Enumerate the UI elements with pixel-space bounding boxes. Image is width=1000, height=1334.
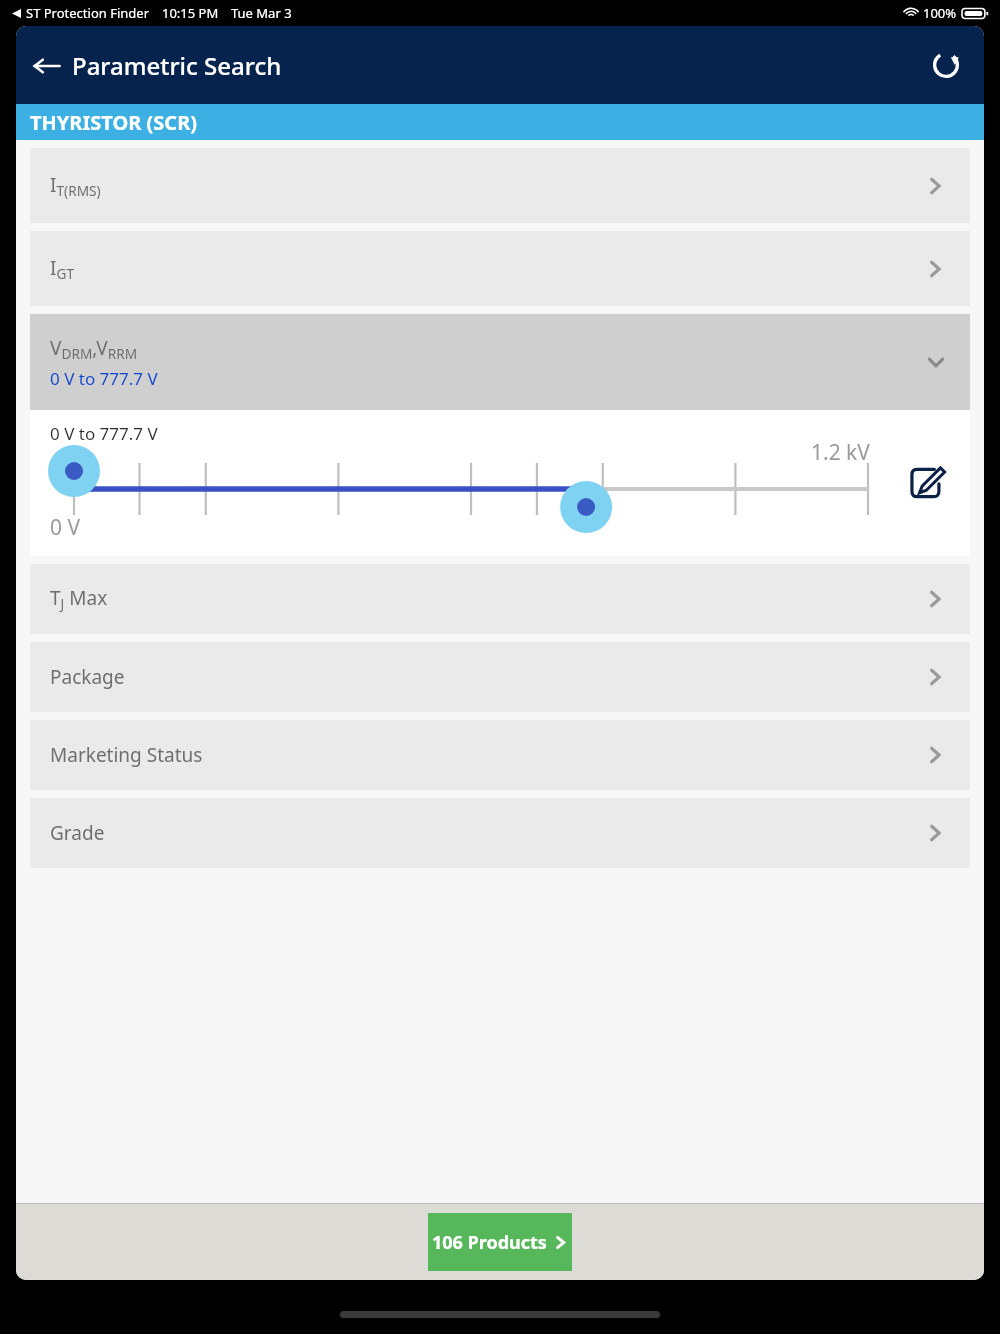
button[interactable]: IT(RMS) xyxy=(30,148,970,223)
staticText: IT(RMS) xyxy=(50,172,101,200)
staticText: 1.2 kV xyxy=(811,438,870,467)
button[interactable]: VDRM,VRRM xyxy=(30,314,970,410)
staticText: Parametric Search xyxy=(72,49,282,82)
staticText: Package xyxy=(50,664,125,690)
button[interactable]: IGT xyxy=(30,231,970,306)
button[interactable]: Refresh xyxy=(924,43,968,87)
staticText: Tue Mar 3 xyxy=(231,4,292,22)
staticText: IGT xyxy=(50,255,74,283)
staticText: THYRISTOR (SCR) xyxy=(30,109,198,136)
staticText: 0 V to 777.7 V xyxy=(50,422,158,445)
button[interactable]: 106 Products xyxy=(428,1213,572,1271)
button[interactable]: Edit range xyxy=(900,457,952,509)
button[interactable]: Voltage range slider xyxy=(52,450,878,528)
button[interactable]: TJ Max xyxy=(30,564,970,634)
button[interactable]: Grade xyxy=(30,798,970,868)
staticText: TJ Max xyxy=(50,585,108,613)
staticText: VDRM,VRRM xyxy=(50,335,138,363)
staticText: 100% xyxy=(923,4,957,22)
staticText: 0 V to 777.7 V xyxy=(50,367,158,390)
staticText: 106 Products xyxy=(432,1230,547,1255)
button[interactable]: THYRISTOR (SCR) xyxy=(16,104,984,140)
staticText: Marketing Status xyxy=(50,742,203,768)
button[interactable]: Package xyxy=(30,642,970,712)
staticText: 0 V xyxy=(50,513,81,542)
staticText: Grade xyxy=(50,820,105,846)
other: Back xyxy=(32,51,62,81)
staticText: 10:15 PM xyxy=(162,4,219,22)
staticText: ST Protection Finder xyxy=(26,4,150,22)
button[interactable]: Marketing Status xyxy=(30,720,970,790)
button[interactable]: Back xyxy=(32,43,282,88)
